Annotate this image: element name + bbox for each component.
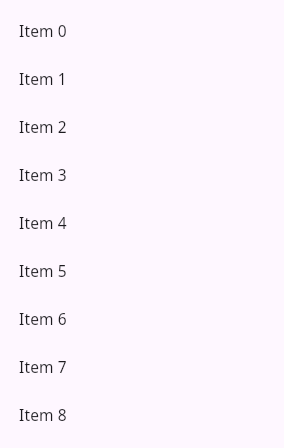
- button[interactable]: Item 8: [0, 390, 284, 438]
- button[interactable]: Item 4: [0, 198, 284, 246]
- staticText: Item 3: [19, 164, 67, 185]
- staticText: Item 7: [19, 356, 67, 377]
- button[interactable]: Item 2: [0, 102, 284, 150]
- button[interactable]: Item 7: [0, 342, 284, 390]
- staticText: Item 8: [19, 404, 67, 425]
- button[interactable]: Item 6: [0, 294, 284, 342]
- staticText: Item 6: [19, 308, 67, 329]
- button[interactable]: Item 5: [0, 246, 284, 294]
- button[interactable]: Item 0: [0, 6, 284, 54]
- staticText: Item 4: [19, 212, 67, 233]
- button[interactable]: Item 3: [0, 150, 284, 198]
- staticText: Item 1: [19, 68, 67, 89]
- staticText: Item 0: [19, 20, 67, 41]
- staticText: Item 5: [19, 260, 67, 281]
- button[interactable]: Item 1: [0, 54, 284, 102]
- staticText: Item 2: [19, 116, 67, 137]
